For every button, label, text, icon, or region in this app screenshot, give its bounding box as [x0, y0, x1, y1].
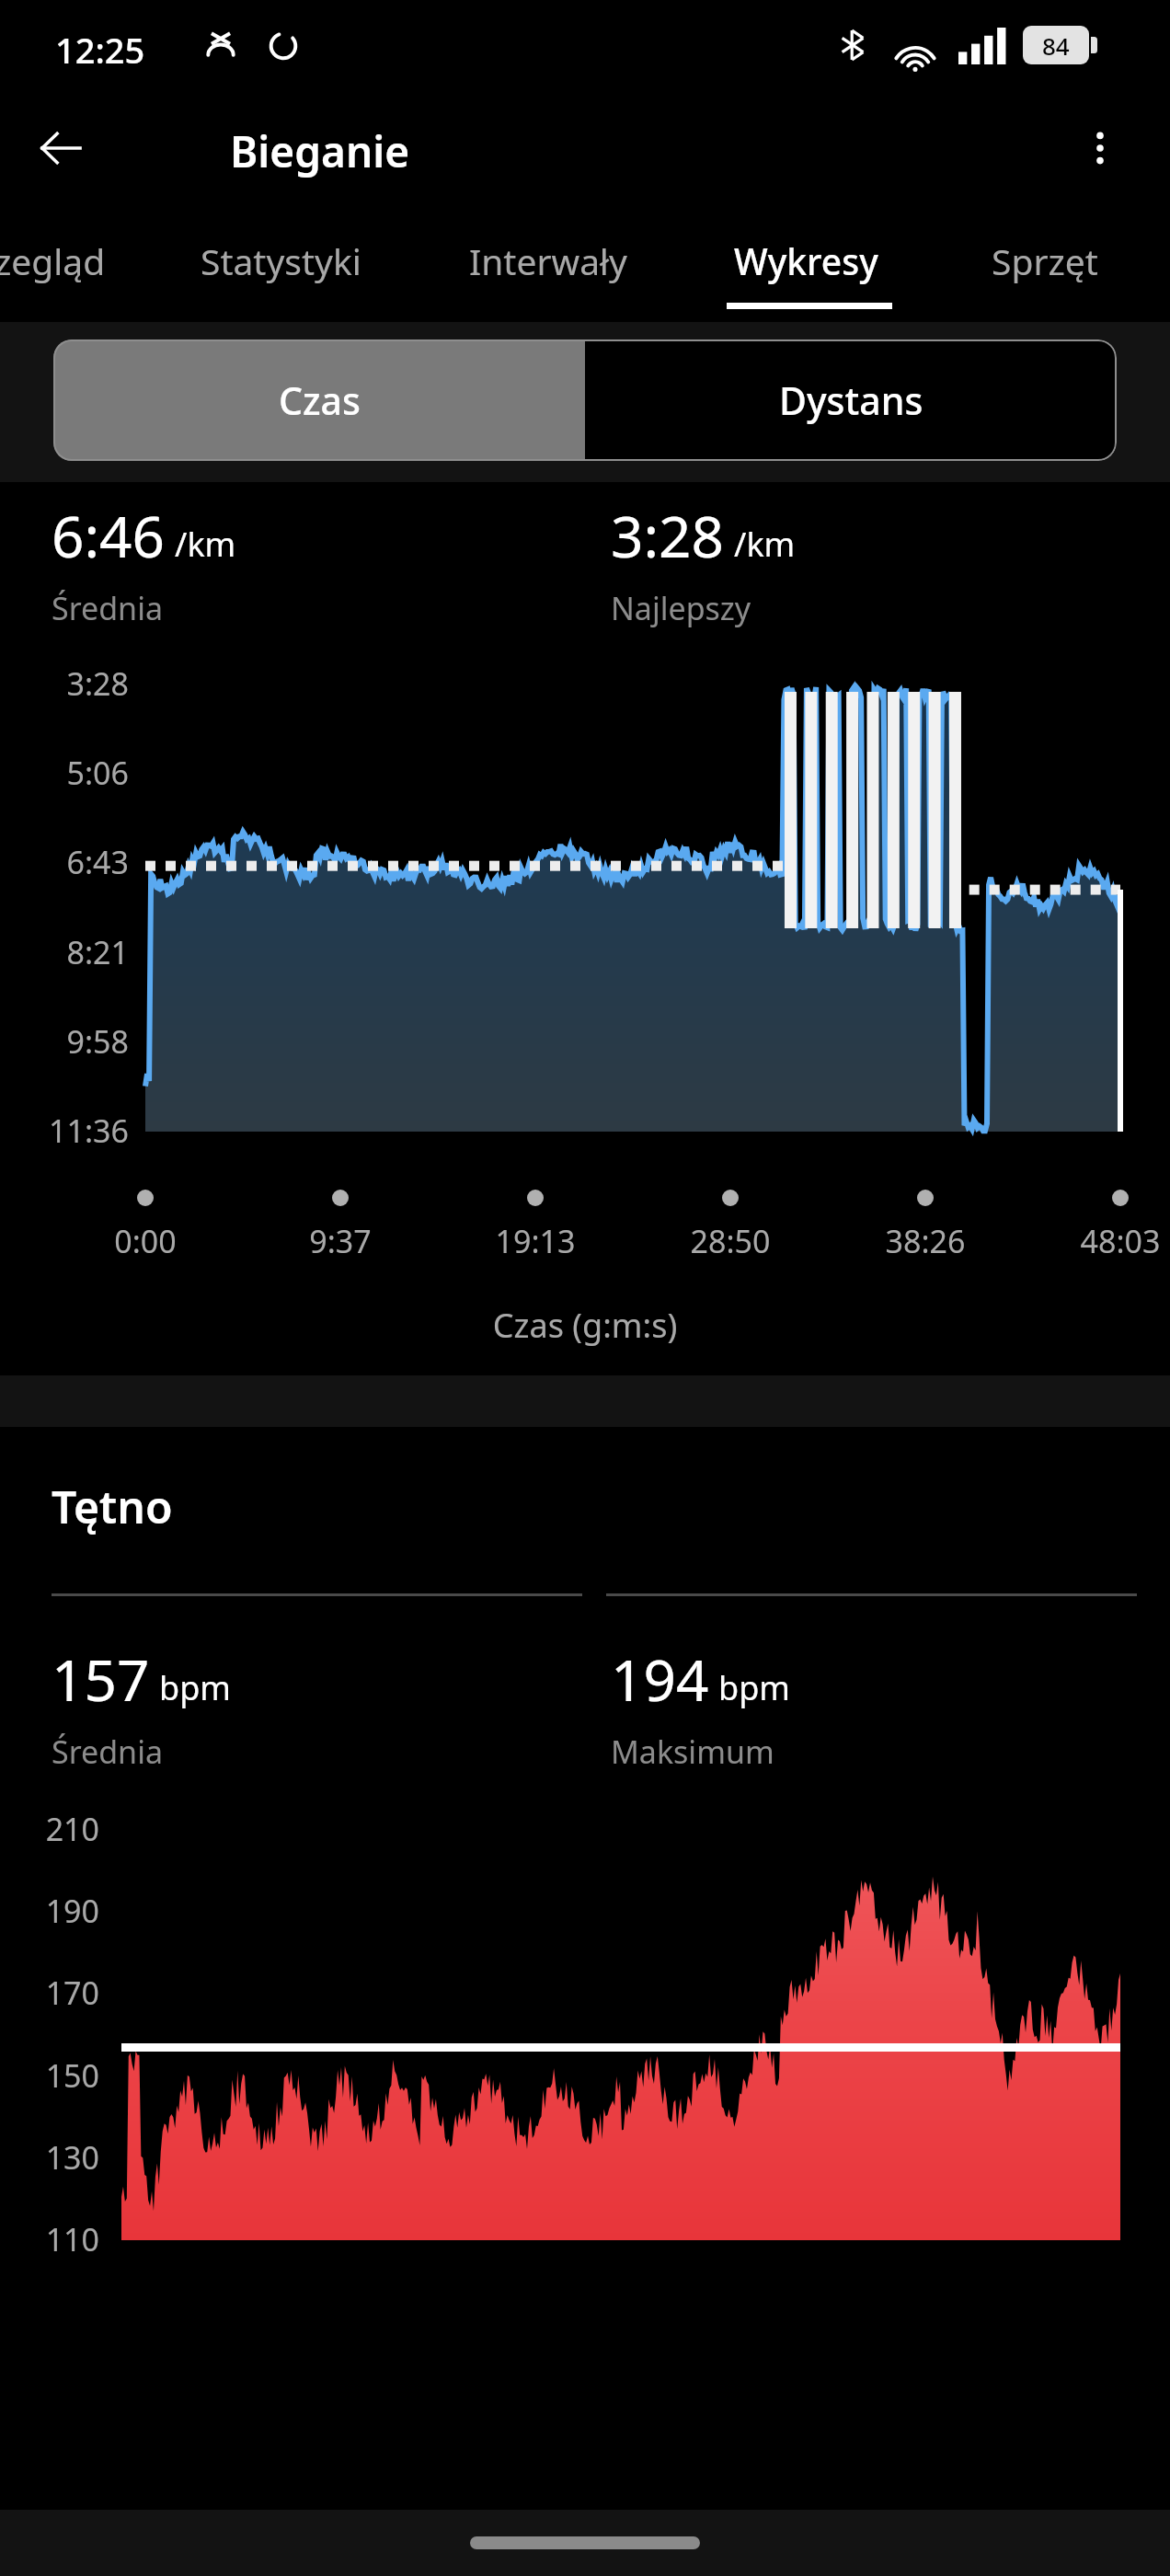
- staticText: 8:21: [22, 931, 129, 973]
- staticText: 0:00: [97, 1220, 193, 1262]
- staticText: 3:28: [22, 662, 129, 705]
- staticText: Czas: [279, 374, 361, 426]
- staticText: 210: [0, 1808, 99, 1850]
- staticText: 19:13: [487, 1220, 583, 1262]
- staticText: 48:03: [1072, 1220, 1168, 1262]
- button[interactable]: Statystyki: [201, 236, 361, 285]
- staticText: 190: [0, 1890, 99, 1932]
- staticText: 84: [1042, 29, 1070, 62]
- staticText: 130: [0, 2136, 99, 2179]
- button[interactable]: Dystans: [585, 339, 1117, 461]
- staticText: 150: [0, 2054, 99, 2097]
- staticText: 28:50: [682, 1220, 778, 1262]
- staticText: 9:37: [292, 1220, 388, 1262]
- staticText: 157: [52, 1640, 150, 1718]
- staticText: 11:36: [22, 1110, 129, 1152]
- staticText: 170: [0, 1972, 99, 2014]
- button[interactable]: More options: [1065, 113, 1135, 183]
- button[interactable]: Sprzęt: [992, 236, 1098, 285]
- staticText: 6:46: [52, 497, 166, 574]
- staticText: 5:06: [22, 752, 129, 794]
- button[interactable]: Home gesture: [470, 2536, 700, 2549]
- staticText: Maksimum: [611, 1731, 774, 1773]
- staticText: 38:26: [877, 1220, 973, 1262]
- staticText: /km: [175, 522, 236, 567]
- staticText: Średnia: [52, 1731, 163, 1773]
- staticText: bpm: [159, 1665, 231, 1710]
- button[interactable]: Interwały: [469, 236, 627, 285]
- staticText: 12:25: [55, 26, 145, 74]
- staticText: 110: [0, 2218, 99, 2260]
- staticText: 9:58: [22, 1020, 129, 1063]
- staticText: Tętno: [52, 1477, 173, 1536]
- staticText: 3:28: [611, 497, 725, 574]
- button[interactable]: Czas: [53, 339, 585, 461]
- staticText: bpm: [718, 1665, 790, 1710]
- button[interactable]: zegląd: [0, 236, 106, 285]
- staticText: 6:43: [22, 841, 129, 883]
- staticText: Średnia: [52, 587, 163, 629]
- staticText: Najlepszy: [611, 587, 751, 629]
- staticText: 194: [611, 1640, 709, 1718]
- button[interactable]: Back: [26, 113, 96, 183]
- staticText: Dystans: [779, 374, 923, 426]
- button[interactable]: Wykresy: [734, 236, 878, 285]
- staticText: Czas (g:m:s): [0, 1303, 1170, 1348]
- staticText: /km: [734, 522, 796, 567]
- staticText: Bieganie: [230, 122, 410, 180]
